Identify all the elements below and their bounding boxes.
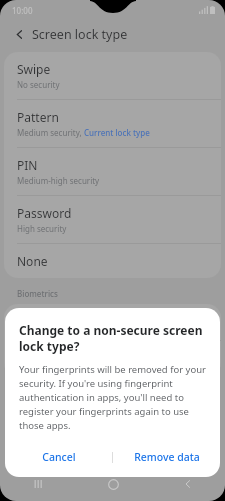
staticText: Medium security, [17,127,84,138]
button[interactable]: PIN [4,148,221,195]
staticText: PIN [17,157,38,173]
staticText: Biometrics [17,288,58,299]
button[interactable]: Password [4,196,221,243]
button[interactable]: Swipe [4,52,221,99]
button[interactable]: None [4,244,221,278]
staticText: No security [17,79,60,90]
button[interactable]: Cancel [5,443,112,471]
button[interactable]: Back [168,469,208,499]
button[interactable]: Navigate up [6,21,32,47]
staticText: Fingerprints [17,351,186,367]
staticText: None [17,253,48,269]
button[interactable]: Home [93,469,133,499]
staticText: High security [17,223,67,234]
staticText: Medium-high security [17,175,100,186]
button[interactable]: Remove data [113,443,220,471]
staticText: Face [17,314,186,330]
staticText: Change to a non-secure screen lock type? [19,322,206,354]
button[interactable]: Fingerprints [4,341,221,377]
button[interactable]: Recents [18,469,58,499]
staticText: Remove data [134,450,200,464]
staticText: Cancel [42,450,76,464]
button[interactable]: Face [4,304,221,340]
staticText: 10:00 [12,5,33,16]
button[interactable]: Pattern [4,100,221,147]
staticText: Pattern [17,109,59,125]
staticText: Current lock type [84,127,150,138]
staticText: Your fingerprints will be removed for yo… [19,363,206,432]
staticText: Swipe [17,61,51,77]
staticText: Password [17,205,72,221]
staticText: Screen lock type [32,26,128,43]
